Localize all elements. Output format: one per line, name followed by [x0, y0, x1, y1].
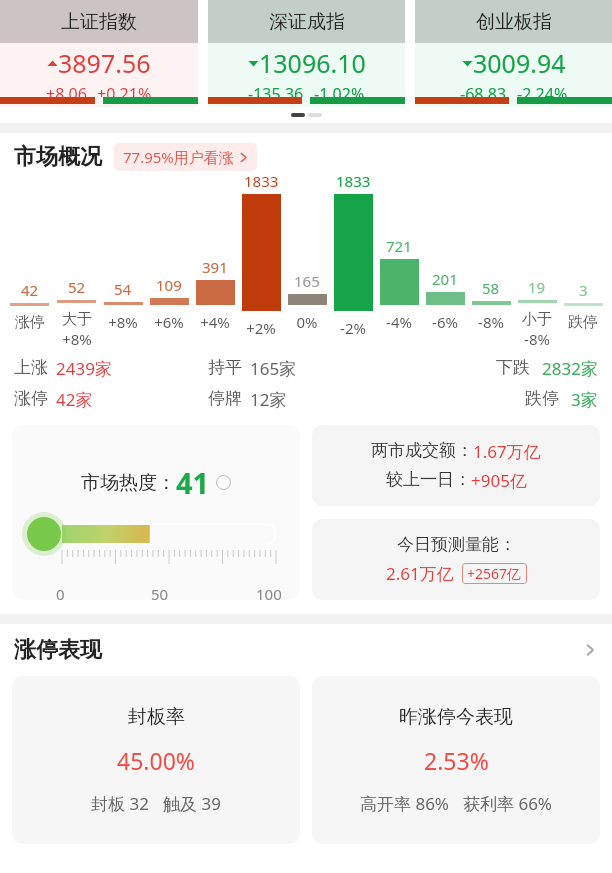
staticText: 1.67万亿	[473, 440, 541, 463]
staticText: 两市成交额：	[371, 440, 473, 461]
staticText: -135.36	[248, 83, 304, 97]
button[interactable]: 两市成交额：	[312, 425, 600, 506]
staticText: 封板率	[128, 705, 185, 729]
staticText: 42	[21, 280, 39, 300]
staticText: -2.24%	[517, 83, 568, 97]
staticText: 165家	[250, 357, 297, 380]
staticText: 50	[151, 584, 169, 600]
staticText: 0%	[296, 312, 318, 332]
staticText: -8%	[478, 312, 504, 332]
staticText: 持平	[208, 357, 242, 378]
staticText: 获利率 66%	[463, 792, 552, 815]
staticText: 1833	[244, 171, 279, 191]
staticText: -8%	[524, 329, 550, 349]
staticText: +0.21%	[97, 83, 152, 97]
staticText: 封板 32	[91, 792, 149, 815]
staticText: +8%	[62, 329, 92, 349]
staticText: +4%	[200, 312, 230, 332]
staticText: 创业板指	[476, 10, 552, 34]
staticText: 下跌	[496, 357, 530, 378]
staticText: 12家	[250, 388, 287, 411]
staticText: 跌停	[568, 313, 598, 332]
staticText: 涨停	[14, 388, 48, 409]
staticText: 19	[528, 277, 546, 297]
staticText: 42家	[56, 388, 93, 411]
staticText: 2439家	[56, 357, 112, 380]
staticText: 2.53%	[424, 745, 489, 776]
staticText: 较上一日：	[386, 469, 471, 490]
button[interactable]: 市场热度：	[12, 425, 300, 600]
staticText: -4%	[386, 312, 412, 332]
staticText: +905亿	[471, 469, 527, 492]
staticText: -68.83	[460, 83, 507, 97]
staticText: 涨停表现	[14, 636, 102, 664]
staticText: +8%	[108, 312, 138, 332]
staticText: 100	[256, 584, 282, 600]
staticText: 小于	[522, 310, 552, 329]
staticText: 上证指数	[61, 10, 137, 34]
staticText: +6%	[154, 312, 184, 332]
button[interactable]: 上证指数	[0, 0, 198, 107]
staticText: 3家	[571, 388, 598, 411]
staticText: 721	[386, 236, 412, 256]
staticText: 触及 39	[163, 792, 221, 815]
staticText: 77.95%用户看涨	[123, 147, 234, 167]
button[interactable]: 昨涨停今表现	[312, 676, 600, 844]
staticText: +2567亿	[467, 564, 522, 583]
staticText: 391	[202, 257, 228, 277]
staticText: -2%	[340, 318, 366, 338]
staticText: 201	[432, 269, 458, 289]
staticText: 涨停	[15, 313, 45, 332]
staticText: 上涨	[14, 357, 48, 378]
staticText: 2.61万亿	[386, 562, 454, 585]
staticText: 今日预测量能：	[397, 534, 516, 555]
other: 说明	[216, 475, 231, 490]
staticText: 2832家	[542, 357, 598, 380]
staticText: +2%	[246, 318, 276, 338]
staticText: 41	[176, 463, 210, 502]
staticText: 大于	[62, 310, 92, 329]
staticText: 165	[294, 271, 320, 291]
staticText: 高开率 86%	[360, 792, 449, 815]
staticText: -6%	[432, 312, 458, 332]
button[interactable]: 创业板指	[415, 0, 612, 107]
staticText: -1.02%	[314, 83, 365, 97]
button[interactable]: 今日预测量能：	[312, 519, 600, 600]
staticText: 跌停	[525, 388, 559, 409]
button[interactable]: 77.95%用户看涨	[114, 143, 257, 171]
button[interactable]: 封板率	[12, 676, 300, 844]
staticText: 市场概况	[14, 143, 102, 171]
staticText: 13096.10	[259, 46, 366, 80]
staticText: 45.00%	[117, 745, 195, 776]
staticText: 109	[156, 275, 182, 295]
staticText: 市场热度：	[81, 471, 176, 495]
staticText: 3897.56	[58, 46, 151, 80]
button[interactable]: 深证成指	[208, 0, 405, 107]
staticText: 3009.94	[473, 46, 566, 80]
button[interactable]: 涨停表现	[0, 636, 612, 664]
staticText: +8.06	[46, 83, 87, 97]
staticText: 深证成指	[269, 10, 345, 34]
staticText: 停牌	[208, 388, 242, 409]
staticText: 0	[56, 584, 65, 600]
other: 更多	[582, 642, 598, 658]
staticText: 54	[114, 279, 132, 299]
staticText: 3	[579, 280, 588, 300]
staticText: 1833	[336, 171, 371, 191]
staticText: 昨涨停今表现	[399, 705, 513, 729]
staticText: 52	[68, 277, 86, 297]
staticText: 58	[482, 278, 500, 298]
